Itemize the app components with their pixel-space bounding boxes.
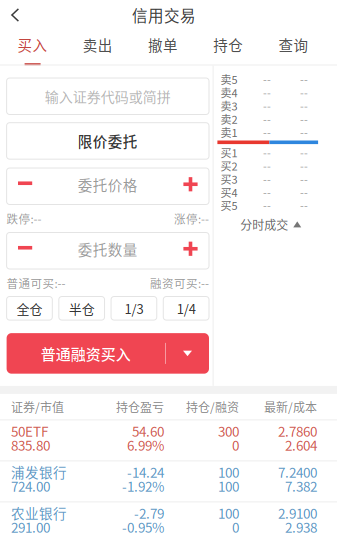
staticText: -- xyxy=(263,144,271,160)
staticText: 信用交易 xyxy=(132,4,196,26)
staticText: 2.9100 xyxy=(278,503,317,523)
staticText: 持仓 xyxy=(213,34,243,55)
button[interactable]: 卖出 xyxy=(65,30,130,64)
button[interactable]: Decrease 委托价格 xyxy=(7,168,44,204)
staticText: 724.00 xyxy=(11,476,50,496)
staticText: 买入 xyxy=(18,34,48,55)
staticText: -- xyxy=(263,71,271,87)
staticText: -- xyxy=(263,197,271,213)
staticText: -- xyxy=(300,158,308,174)
staticText: 涨停:-- xyxy=(174,210,209,227)
staticText: 291.00 xyxy=(11,517,50,537)
staticText: -- xyxy=(300,197,308,213)
staticText: -14.24 xyxy=(127,462,164,482)
button[interactable]: Increase 委托价格 xyxy=(172,168,209,204)
staticText: 1/3 xyxy=(124,299,143,318)
staticText: 委托数量 xyxy=(78,239,138,260)
staticText: 限价委托 xyxy=(78,130,138,151)
staticText: -- xyxy=(263,84,271,100)
staticText: 证券/市值 xyxy=(11,398,64,415)
staticText: 54.60 xyxy=(132,421,164,441)
button[interactable]: 普通融资买入 xyxy=(7,333,209,374)
staticText: 农业银行 xyxy=(11,503,67,523)
staticText: 委托价格 xyxy=(78,174,138,195)
staticText: -0.95% xyxy=(122,517,164,537)
staticText: 1/4 xyxy=(177,299,196,318)
staticText: 查询 xyxy=(278,34,308,55)
staticText: 100 xyxy=(218,503,239,523)
staticText: 融资可买:-- xyxy=(150,275,209,291)
staticText: 输入证券代码或简拼 xyxy=(45,86,171,106)
staticText: 买3 xyxy=(220,171,237,187)
staticText: 100 xyxy=(218,462,239,482)
staticText: -- xyxy=(263,124,271,140)
button[interactable]: Back xyxy=(0,0,31,30)
staticText: -- xyxy=(300,111,308,127)
staticText: 普通融资买入 xyxy=(41,342,131,364)
staticText: 2.938 xyxy=(285,517,317,537)
button[interactable]: 买入 xyxy=(0,30,65,64)
staticText: 6.99% xyxy=(127,435,164,455)
staticText: 7.2400 xyxy=(278,462,317,482)
staticText: 2.604 xyxy=(285,435,317,455)
staticText: -- xyxy=(263,98,271,114)
button[interactable]: 全仓 xyxy=(7,296,52,320)
staticText: -- xyxy=(300,84,308,100)
staticText: 7.382 xyxy=(285,476,317,496)
staticText: 卖5 xyxy=(220,71,237,87)
staticText: 卖2 xyxy=(220,111,237,127)
staticText: -- xyxy=(300,124,308,140)
button[interactable]: 持仓 xyxy=(196,30,261,64)
staticText: -- xyxy=(263,171,271,187)
staticText: 买4 xyxy=(220,184,237,200)
staticText: -2.79 xyxy=(134,503,164,523)
staticText: 835.80 xyxy=(11,435,50,455)
staticText: 卖出 xyxy=(83,34,113,55)
staticText: -- xyxy=(300,71,308,87)
staticText: -1.92% xyxy=(122,476,164,496)
button[interactable]: Decrease 委托数量 xyxy=(7,232,44,269)
staticText: 全仓 xyxy=(16,299,42,318)
staticText: -- xyxy=(300,171,308,187)
staticText: 持仓/融资 xyxy=(186,398,239,415)
staticText: 撤单 xyxy=(148,34,178,55)
staticText: 浦发银行 xyxy=(11,462,67,482)
staticText: 买2 xyxy=(220,158,237,174)
staticText: -- xyxy=(300,98,308,114)
staticText: 2.7860 xyxy=(278,421,317,441)
button[interactable]: 半仓 xyxy=(59,296,104,320)
staticText: 0 xyxy=(232,517,239,537)
staticText: 分时成交 xyxy=(240,216,288,233)
staticText: -- xyxy=(263,111,271,127)
staticText: 50ETF xyxy=(11,421,48,441)
staticText: -- xyxy=(300,184,308,200)
staticText: 跌停:-- xyxy=(7,210,42,227)
button[interactable]: 1/4 xyxy=(163,296,209,320)
button[interactable]: 撤单 xyxy=(130,30,196,64)
staticText: 卖4 xyxy=(220,84,237,100)
staticText: 半仓 xyxy=(69,299,95,318)
button[interactable]: 分时成交 xyxy=(217,217,318,232)
staticText: 卖1 xyxy=(220,124,237,140)
staticText: 0 xyxy=(232,435,239,455)
staticText: 普通可买:-- xyxy=(7,275,66,291)
button[interactable]: Increase 委托数量 xyxy=(172,232,209,269)
staticText: 最新/成本 xyxy=(264,398,317,415)
staticText: 买5 xyxy=(220,197,237,213)
button[interactable]: 查询 xyxy=(261,30,326,64)
staticText: -- xyxy=(263,184,271,200)
button[interactable]: 1/3 xyxy=(111,296,157,320)
staticText: 持仓盈亏 xyxy=(116,398,164,415)
staticText: 买1 xyxy=(220,144,237,160)
staticText: -- xyxy=(300,144,308,160)
staticText: 卖3 xyxy=(220,98,237,114)
staticText: -- xyxy=(263,158,271,174)
staticText: 300 xyxy=(218,421,239,441)
staticText: 100 xyxy=(218,476,239,496)
